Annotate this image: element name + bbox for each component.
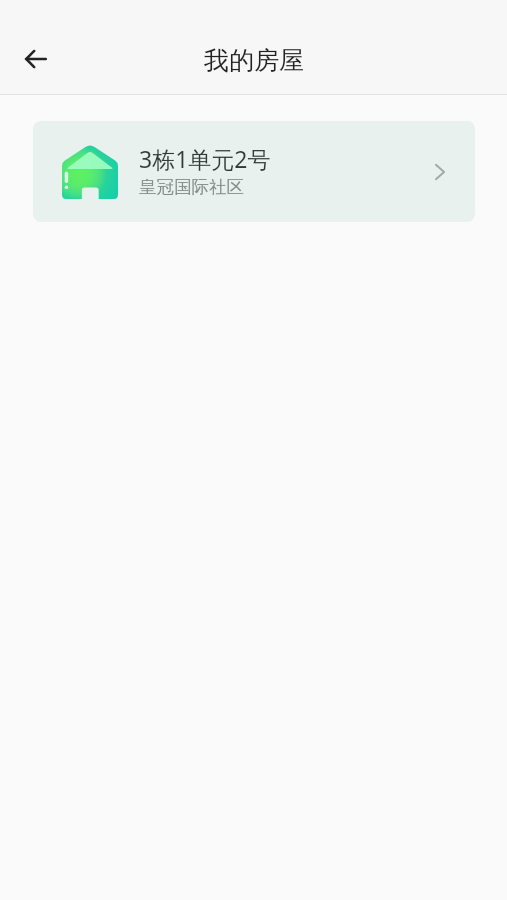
staticText: 3栋1单元2号 [139, 143, 271, 174]
staticText: 皇冠国际社区 [139, 176, 244, 198]
staticText: 我的房屋 [204, 45, 304, 76]
button[interactable]: 3栋1单元2号 [33, 121, 475, 222]
button[interactable]: Back [12, 35, 60, 83]
